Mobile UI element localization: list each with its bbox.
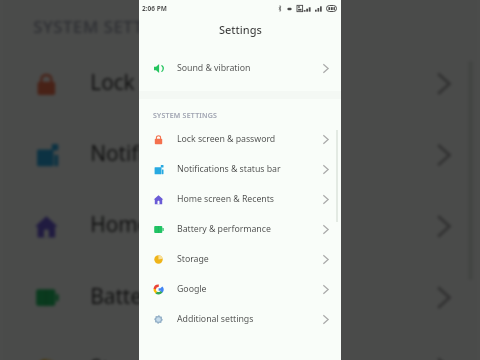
button[interactable]: Google — [139, 274, 341, 304]
staticText: Storage — [90, 353, 166, 360]
button[interactable]: Sound & vibration — [139, 53, 341, 83]
staticText: Battery & performance — [177, 223, 271, 235]
staticText: Home screen & Recents — [177, 193, 274, 205]
staticText: Storage — [177, 253, 209, 265]
button[interactable]: Storage — [0, 332, 480, 360]
button[interactable]: Lock screen & password — [0, 47, 480, 118]
staticText: Notifications & status bar — [90, 140, 337, 168]
button[interactable]: Home screen & Recents — [139, 184, 341, 214]
button[interactable]: Battery & performance — [139, 214, 341, 244]
staticText: SYSTEM SETTINGS — [153, 111, 218, 121]
staticText: Lock screen & password — [90, 68, 325, 97]
staticText: Home screen & Recents — [90, 211, 321, 239]
staticText: Sound & vibration — [177, 62, 251, 74]
staticText: Settings — [219, 22, 262, 37]
button[interactable]: Battery & performance — [0, 261, 480, 332]
button[interactable]: Home screen & Recents — [0, 189, 480, 261]
button[interactable]: Notifications & status bar — [139, 154, 341, 184]
staticText: Notifications & status bar — [177, 163, 281, 175]
button[interactable]: Additional settings — [139, 304, 341, 334]
staticText: Google — [177, 283, 207, 295]
staticText: Battery & performance — [90, 282, 314, 311]
button[interactable]: Storage — [139, 244, 341, 274]
staticText: SYSTEM SETTINGS — [33, 16, 188, 40]
button[interactable]: Notifications & status bar — [0, 118, 480, 189]
staticText: Additional settings — [177, 313, 254, 325]
staticText: 2:06 PM — [142, 4, 167, 13]
staticText: Lock screen & password — [177, 133, 276, 145]
button[interactable]: Lock screen & password — [139, 124, 341, 154]
